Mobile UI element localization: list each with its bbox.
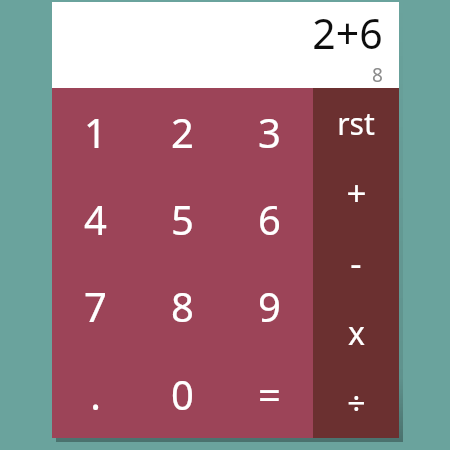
button[interactable]: 3 <box>226 88 313 175</box>
button[interactable]: 8 <box>139 262 226 350</box>
button[interactable]: Divide <box>313 368 399 438</box>
staticText: 3 <box>258 105 281 159</box>
staticText: 1 <box>84 105 107 159</box>
staticText: 9 <box>258 279 281 333</box>
staticText: ÷ <box>347 381 366 425</box>
staticText: - <box>350 239 362 287</box>
button[interactable]: 6 <box>226 175 313 262</box>
button[interactable]: 9 <box>226 262 313 350</box>
staticText: 2 <box>171 105 194 159</box>
staticText: 5 <box>171 192 194 246</box>
staticText: 7 <box>84 279 107 333</box>
button[interactable]: 1 <box>52 88 139 175</box>
staticText: = <box>258 367 281 421</box>
staticText: rst <box>337 103 375 144</box>
button[interactable]: 7 <box>52 262 139 350</box>
staticText: 6 <box>258 192 281 246</box>
button[interactable]: 0 <box>139 350 226 438</box>
button[interactable]: 4 <box>52 175 139 262</box>
button[interactable]: Multiply <box>313 298 399 368</box>
staticText: . <box>90 367 101 421</box>
staticText: + <box>346 169 367 217</box>
staticText: x <box>348 311 365 355</box>
button[interactable]: 2 <box>139 88 226 175</box>
staticText: 8 <box>372 62 383 88</box>
staticText: 2+6 <box>312 5 383 61</box>
button[interactable]: . <box>52 350 139 438</box>
staticText: 4 <box>84 192 107 246</box>
button[interactable]: 5 <box>139 175 226 262</box>
button[interactable]: = <box>226 350 313 438</box>
staticText: 8 <box>171 279 194 333</box>
button[interactable]: Minus <box>313 228 399 298</box>
button[interactable]: Reset <box>313 88 399 158</box>
staticText: 0 <box>171 367 194 421</box>
button[interactable]: Plus <box>313 158 399 228</box>
